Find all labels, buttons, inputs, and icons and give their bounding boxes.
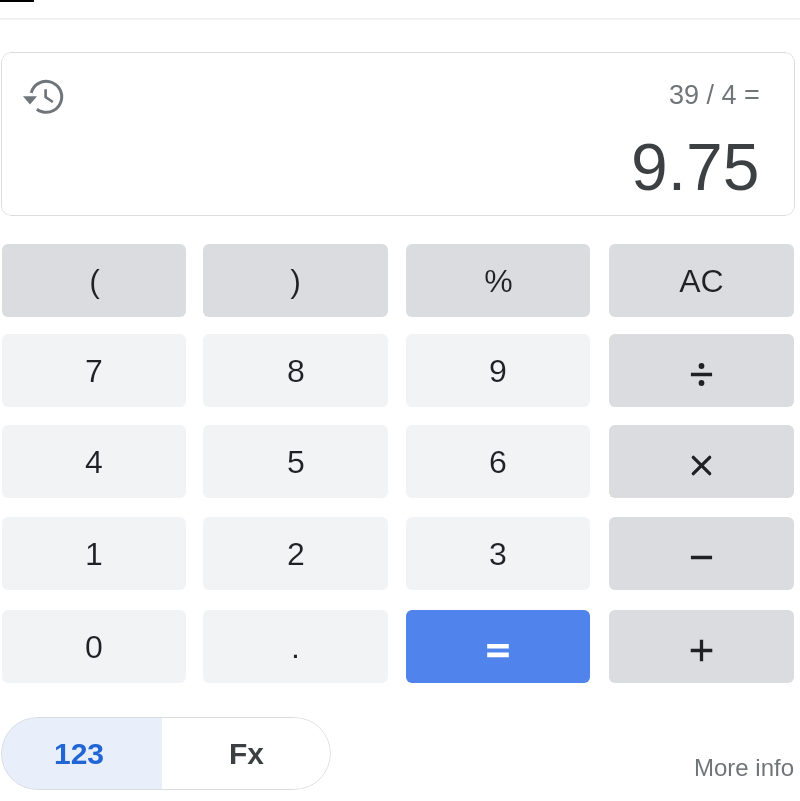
button[interactable]: )	[203, 244, 388, 317]
button[interactable]: Equals	[406, 610, 590, 683]
staticText: )	[290, 263, 301, 299]
staticText: 9	[489, 353, 507, 389]
button[interactable]: 0	[2, 610, 186, 683]
staticText: 0	[85, 629, 103, 665]
button[interactable]: Fx	[162, 717, 331, 790]
button[interactable]: 7	[2, 334, 186, 407]
button[interactable]: Subtract	[609, 517, 794, 590]
staticText: 7	[85, 353, 103, 389]
button[interactable]: 3	[406, 517, 590, 590]
staticText: .	[291, 629, 300, 665]
staticText: 1	[85, 536, 103, 572]
button[interactable]: 9	[406, 334, 590, 407]
button[interactable]: 6	[406, 425, 590, 498]
button[interactable]: More info	[694, 754, 795, 781]
staticText: %	[484, 263, 513, 299]
staticText: 123	[54, 737, 105, 771]
button[interactable]: 4	[2, 425, 186, 498]
staticText: 5	[287, 444, 305, 480]
button[interactable]: Divide	[609, 334, 794, 407]
button[interactable]: %	[406, 244, 590, 317]
staticText: 6	[489, 444, 507, 480]
staticText: 9.75	[631, 130, 760, 204]
staticText: 3	[489, 536, 507, 572]
button[interactable]: AC	[609, 244, 794, 317]
button[interactable]: 2	[203, 517, 388, 590]
staticText: 2	[287, 536, 305, 572]
staticText: More info	[694, 754, 795, 781]
button[interactable]: 5	[203, 425, 388, 498]
button[interactable]: 8	[203, 334, 388, 407]
button[interactable]: Multiply	[609, 425, 794, 498]
staticText: 8	[287, 353, 305, 389]
button[interactable]: History	[1, 72, 61, 132]
staticText: 39 / 4 =	[669, 80, 760, 110]
button[interactable]: (	[2, 244, 186, 317]
staticText: 4	[85, 444, 103, 480]
staticText: AC	[679, 263, 724, 299]
staticText: Fx	[229, 737, 265, 771]
button[interactable]: Add	[609, 610, 794, 683]
button[interactable]: 123	[1, 717, 162, 790]
staticText: (	[89, 263, 100, 299]
button[interactable]: .	[203, 610, 388, 683]
button[interactable]: 1	[2, 517, 186, 590]
